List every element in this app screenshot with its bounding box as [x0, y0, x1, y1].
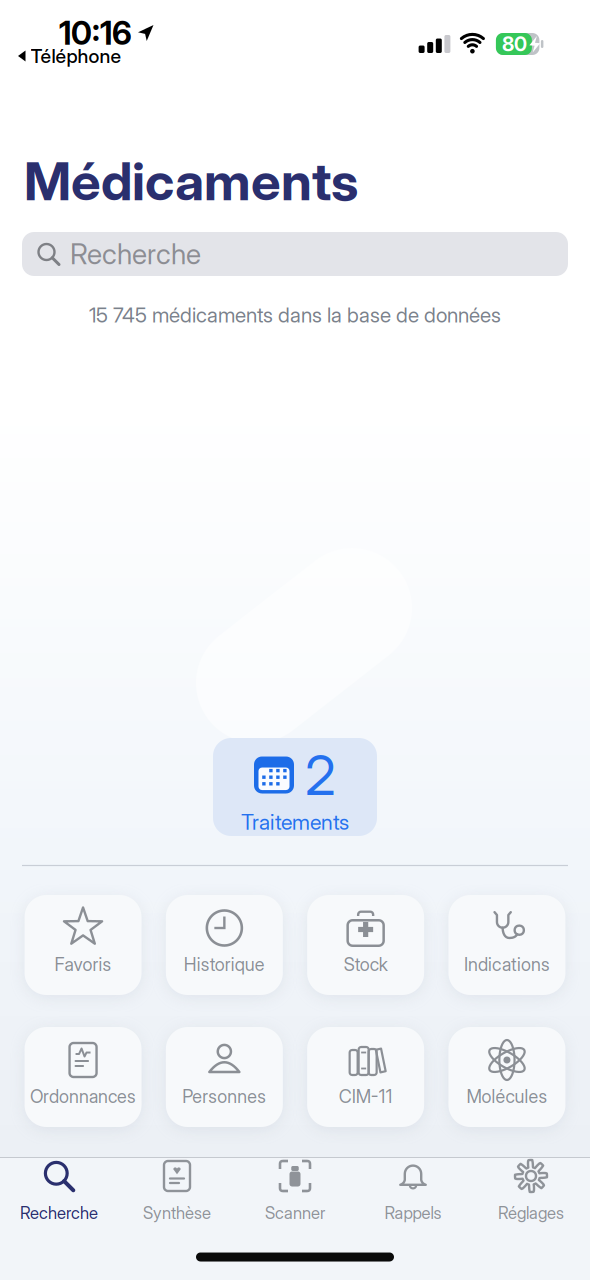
- staticText: Favoris: [55, 954, 112, 975]
- staticText: Recherche: [20, 1203, 98, 1223]
- button[interactable]: Molécules: [448, 1027, 565, 1127]
- button[interactable]: Recherche: [22, 232, 568, 276]
- button[interactable]: Indications: [448, 895, 565, 995]
- staticText: Stock: [344, 954, 388, 975]
- staticText: Réglages: [498, 1203, 564, 1223]
- button[interactable]: Réglages: [472, 1157, 590, 1231]
- staticText: Rappels: [384, 1203, 441, 1223]
- button[interactable]: Historique: [166, 895, 283, 995]
- button[interactable]: Stock: [307, 895, 424, 995]
- button[interactable]: Recherche: [0, 1157, 118, 1231]
- button[interactable]: Scanner: [236, 1157, 354, 1231]
- staticText: Molécules: [466, 1086, 547, 1107]
- staticText: Recherche: [70, 237, 201, 271]
- staticText: Scanner: [265, 1203, 325, 1223]
- staticText: Ordonnances: [30, 1086, 136, 1107]
- staticText: 10:16: [59, 14, 132, 52]
- button[interactable]: Rappels: [354, 1157, 472, 1231]
- staticText: CIM-11: [339, 1086, 393, 1107]
- staticText: Indications: [464, 954, 550, 975]
- button[interactable]: 2: [213, 738, 377, 836]
- button[interactable]: Ordonnances: [25, 1027, 142, 1127]
- staticText: Téléphone: [30, 44, 121, 68]
- button[interactable]: Téléphone: [16, 44, 121, 68]
- staticText: Synthèse: [143, 1203, 211, 1223]
- staticText: Personnes: [182, 1086, 266, 1107]
- button[interactable]: Personnes: [166, 1027, 283, 1127]
- staticText: 2: [305, 742, 336, 808]
- staticText: Historique: [184, 954, 265, 975]
- button[interactable]: Favoris: [25, 895, 142, 995]
- staticText: Médicaments: [24, 149, 358, 213]
- button[interactable]: Synthèse: [118, 1157, 236, 1231]
- staticText: 15 745 médicaments dans la base de donné…: [89, 302, 501, 327]
- staticText: Traitements: [241, 809, 349, 835]
- staticText: 80: [502, 32, 527, 56]
- button[interactable]: CIM-11: [307, 1027, 424, 1127]
